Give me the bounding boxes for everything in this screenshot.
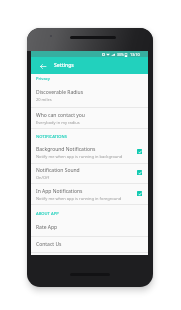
staticText: 30% <box>117 52 124 57</box>
staticText: 13:10 <box>130 52 140 57</box>
staticText: Contact Us <box>36 241 62 248</box>
staticText: Background Notifications <box>36 146 96 153</box>
staticText: Everybody in my radius <box>36 120 80 125</box>
button[interactable]: Toggle setting <box>137 170 142 175</box>
staticText: Notify me when app is running in backgro… <box>36 154 123 159</box>
button[interactable]: Background Notifications <box>31 142 148 163</box>
staticText: Notify me when app is running in foregro… <box>36 196 122 201</box>
staticText: Who can contact you <box>36 112 85 119</box>
staticText: ABOUT APP <box>36 211 59 217</box>
button[interactable]: Toggle setting <box>137 149 142 154</box>
staticText: In App Notifications <box>36 188 83 195</box>
button[interactable]: Notification Sound <box>31 164 148 183</box>
button[interactable]: In App Notifications <box>31 184 148 204</box>
button[interactable]: Rate App <box>31 219 148 236</box>
staticText: Settings <box>54 62 74 69</box>
button[interactable]: Contact Us <box>31 237 148 252</box>
staticText: Discoverable Radius <box>36 89 84 96</box>
staticText: NOTIFICATIONS <box>36 134 68 140</box>
staticText: Privacy <box>36 76 51 82</box>
staticText: On/Off <box>36 175 49 180</box>
button[interactable]: Discoverable Radius <box>31 84 148 107</box>
staticText: 20 miles <box>36 97 52 102</box>
button[interactable]: Toggle setting <box>137 191 142 196</box>
staticText: Rate App <box>36 224 58 231</box>
button[interactable]: Back <box>38 61 48 71</box>
button[interactable]: Who can contact you <box>31 108 148 128</box>
staticText: Notification Sound <box>36 167 80 174</box>
